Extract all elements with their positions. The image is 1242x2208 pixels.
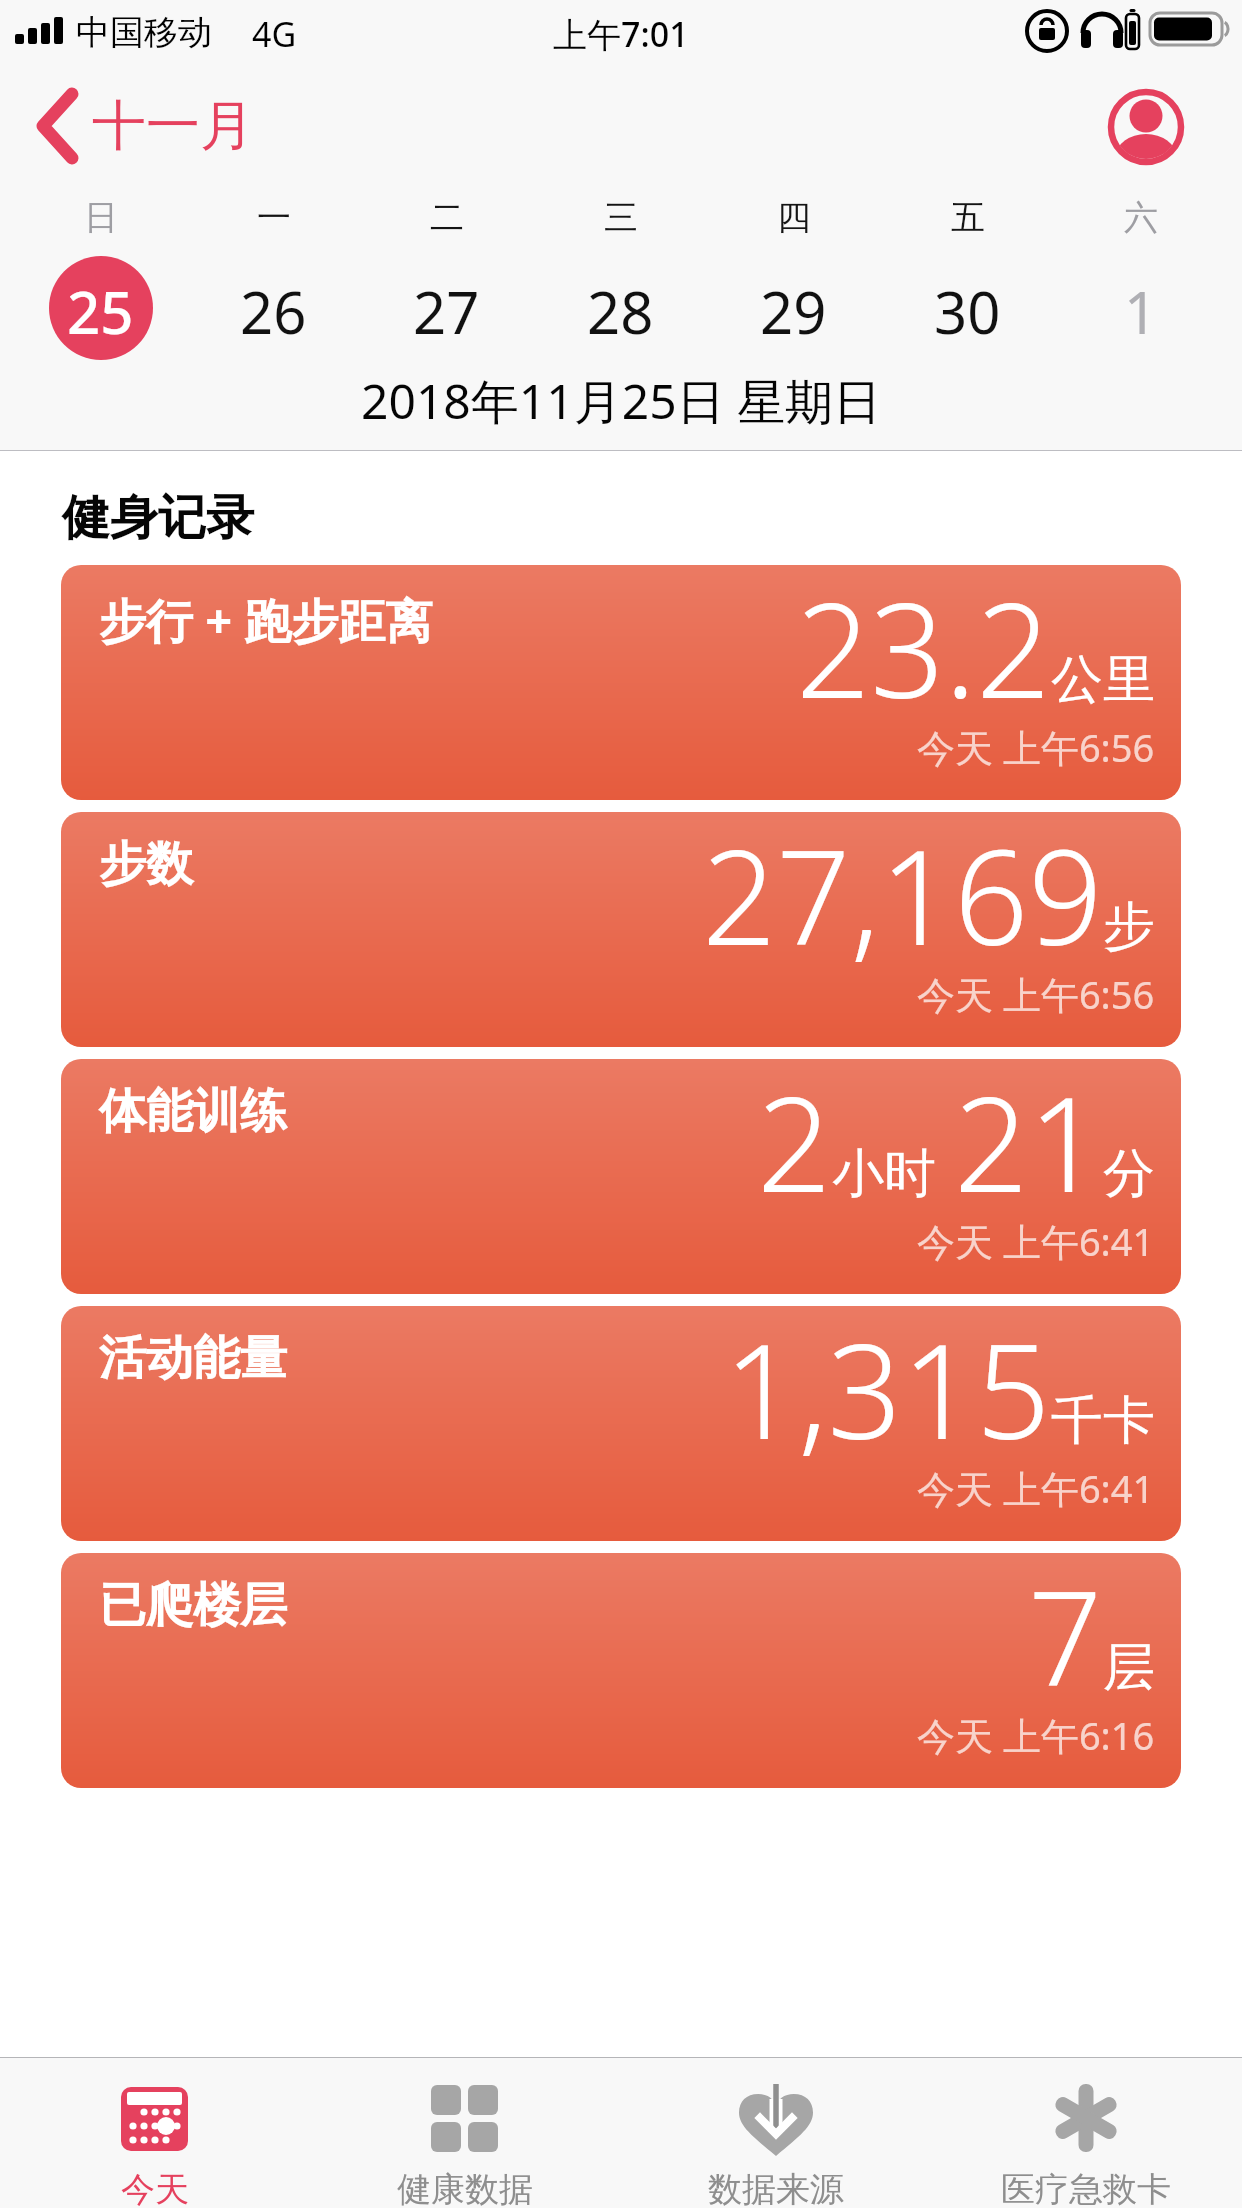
staticText: 27,169 xyxy=(702,806,1103,983)
staticText: 六 xyxy=(1124,196,1158,236)
staticText: 三 xyxy=(604,196,638,236)
staticText: 五 xyxy=(951,196,985,236)
staticText: 21 xyxy=(954,1053,1103,1230)
staticText: 25 xyxy=(67,272,134,344)
staticText: 已爬楼层 xyxy=(99,1576,287,1635)
staticText: 体能训练 xyxy=(99,1082,287,1141)
staticText: 26 xyxy=(240,272,307,344)
staticText: 层 xyxy=(1103,1635,1155,1701)
staticText: 医疗急救卡 xyxy=(1001,2168,1171,2208)
staticText: 2018年11月25日 星期日 xyxy=(361,368,882,430)
staticText: 上午7:01 xyxy=(553,11,689,55)
staticText: 小时 xyxy=(832,1141,936,1207)
staticText: 今天 上午6:56 xyxy=(917,968,1155,1020)
staticText: 1 xyxy=(1124,272,1158,344)
staticText: 27 xyxy=(413,272,480,344)
staticText: 今天 上午6:56 xyxy=(917,721,1155,773)
staticText: 2 xyxy=(757,1053,832,1230)
staticText: 今天 上午6:16 xyxy=(917,1709,1155,1761)
staticText: 公里 xyxy=(1051,647,1155,713)
staticText: 千卡 xyxy=(1051,1388,1155,1454)
staticText: 分 xyxy=(1103,1141,1155,1207)
staticText: 数据来源 xyxy=(708,2168,844,2208)
staticText: 23.2 xyxy=(796,559,1051,736)
staticText: 1,315 xyxy=(724,1300,1051,1477)
staticText: 健身记录 xyxy=(62,488,254,548)
staticText: 步数 xyxy=(99,835,193,894)
staticText: 二 xyxy=(430,196,464,236)
staticText: 今天 上午6:41 xyxy=(917,1215,1155,1267)
staticText: 今天 xyxy=(121,2168,189,2208)
staticText: 29 xyxy=(760,272,827,344)
staticText: 30 xyxy=(934,272,1001,344)
staticText: 中国移动 xyxy=(76,11,212,54)
staticText: 活动能量 xyxy=(99,1329,287,1388)
staticText: 十一月 xyxy=(92,92,254,160)
staticText: 今天 上午6:41 xyxy=(917,1462,1155,1514)
staticText: 健康数据 xyxy=(397,2168,533,2208)
staticText: 4G xyxy=(252,11,297,57)
staticText: 一 xyxy=(257,196,291,236)
staticText: 步 xyxy=(1103,894,1155,960)
staticText: 步行 + 跑步距离 xyxy=(99,588,433,652)
staticText: 四 xyxy=(777,196,811,236)
staticText: 7 xyxy=(1028,1547,1103,1724)
staticText: 28 xyxy=(587,272,654,344)
staticText: 日 xyxy=(84,196,118,236)
